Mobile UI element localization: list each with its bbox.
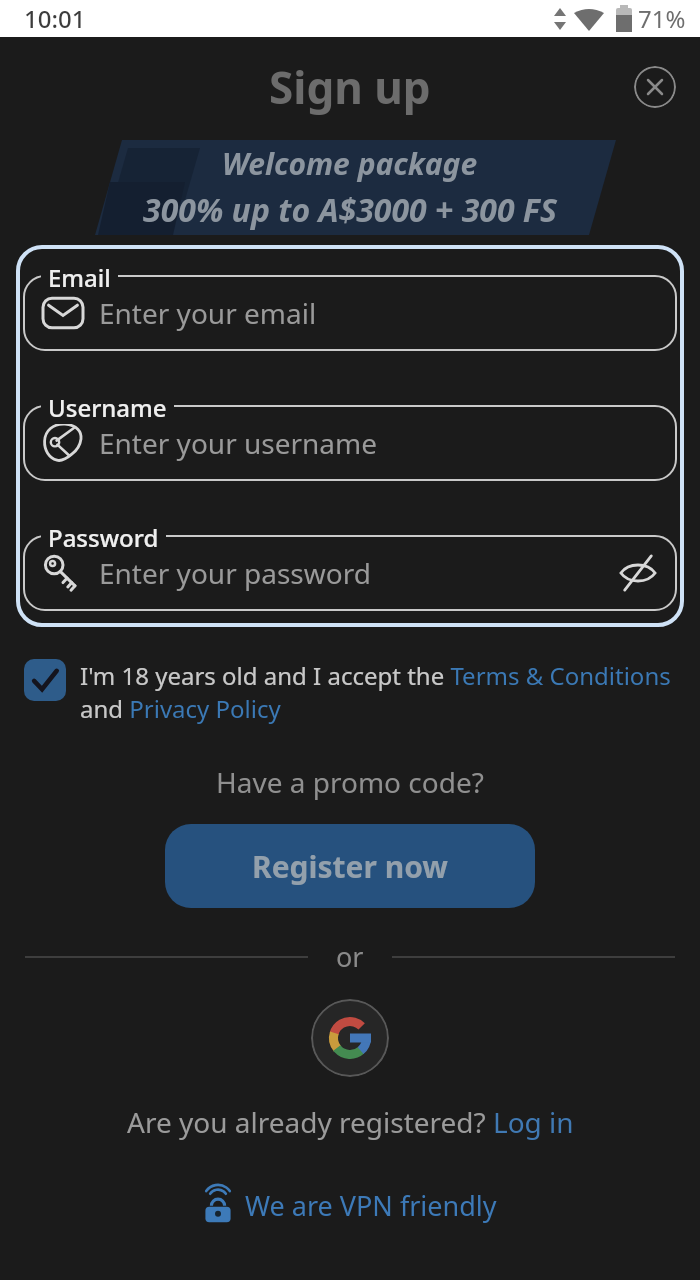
button[interactable] xyxy=(311,999,389,1077)
button[interactable]: Enter your email xyxy=(23,275,677,351)
staticText: 71% xyxy=(638,2,686,35)
staticText: Register now xyxy=(252,846,449,887)
button[interactable]: Are you already registered? Log in xyxy=(0,1103,700,1141)
staticText: 10:01 xyxy=(24,2,86,35)
staticText: Sign up xyxy=(269,57,431,117)
staticText: Enter your username xyxy=(99,424,378,462)
staticText: Email xyxy=(48,261,111,294)
staticText: and Privacy Policy xyxy=(80,692,281,725)
button[interactable]: We are VPN friendly xyxy=(203,1187,497,1224)
staticText: 300% up to A$3000 + 300 FS xyxy=(143,188,557,232)
staticText: Are you already registered? Log in xyxy=(127,1103,574,1141)
staticText: or xyxy=(336,938,364,975)
staticText: Password xyxy=(48,521,159,554)
button[interactable]: Enter your password xyxy=(23,535,677,611)
staticText: Username xyxy=(48,391,167,424)
staticText: Welcome package xyxy=(222,143,478,184)
button[interactable]: I'm 18 years old and I accept the Terms … xyxy=(24,659,671,725)
staticText: We are VPN friendly xyxy=(245,1187,497,1224)
staticText: I'm 18 years old and I accept the Terms … xyxy=(80,659,671,692)
staticText: Enter your password xyxy=(99,554,371,592)
button[interactable] xyxy=(619,554,657,592)
button[interactable]: Have a promo code? xyxy=(216,763,484,801)
button[interactable] xyxy=(634,66,676,108)
staticText: Enter your email xyxy=(99,294,317,332)
button[interactable]: Register now xyxy=(165,824,535,908)
button[interactable]: Enter your username xyxy=(23,405,677,481)
